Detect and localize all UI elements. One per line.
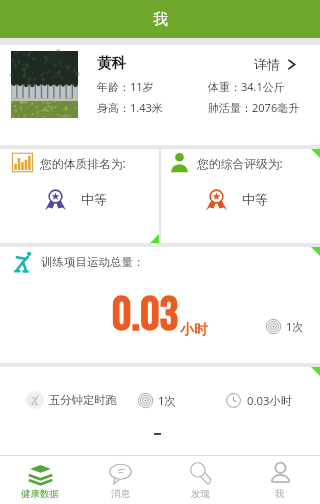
- staticText: 身高：1.43米: [97, 100, 163, 115]
- staticText: 我: [153, 10, 168, 29]
- button[interactable]: 训练项目运动总量：: [0, 247, 320, 363]
- staticText: 体重：34.1公斤: [208, 79, 285, 94]
- staticText: 发现: [191, 488, 210, 500]
- button[interactable]: Discover: [160, 455, 240, 504]
- staticText: 0.03: [112, 287, 179, 345]
- button[interactable]: 黄科: [0, 45, 320, 145]
- staticText: 小时: [180, 321, 208, 339]
- staticText: 中等: [242, 191, 268, 207]
- staticText: 年龄：11岁: [97, 79, 154, 94]
- staticText: 消息: [111, 488, 130, 500]
- staticText: 肺活量：2076毫升: [208, 100, 300, 115]
- staticText: 您的体质排名为:: [40, 155, 126, 171]
- staticText: 训练项目运动总量：: [41, 255, 145, 269]
- staticText: 我: [275, 488, 285, 500]
- button[interactable]: 五分钟定时跑: [0, 379, 320, 421]
- button[interactable]: Me: [240, 455, 320, 504]
- staticText: 0.03小时: [247, 393, 293, 408]
- staticText: 1次: [158, 393, 176, 408]
- staticText: 1次: [286, 319, 304, 334]
- staticText: 黄科: [97, 54, 126, 72]
- staticText: 详情: [254, 56, 280, 72]
- staticText: 健康数据: [21, 488, 59, 500]
- staticText: 您的综合评级为:: [197, 155, 283, 171]
- button[interactable]: Messages: [80, 455, 160, 504]
- button[interactable]: Health data: [0, 455, 80, 504]
- button[interactable]: 您的综合评级为:: [161, 149, 320, 243]
- button[interactable]: 您的体质排名为:: [0, 149, 159, 243]
- staticText: 五分钟定时跑: [49, 393, 117, 407]
- staticText: 中等: [81, 191, 107, 207]
